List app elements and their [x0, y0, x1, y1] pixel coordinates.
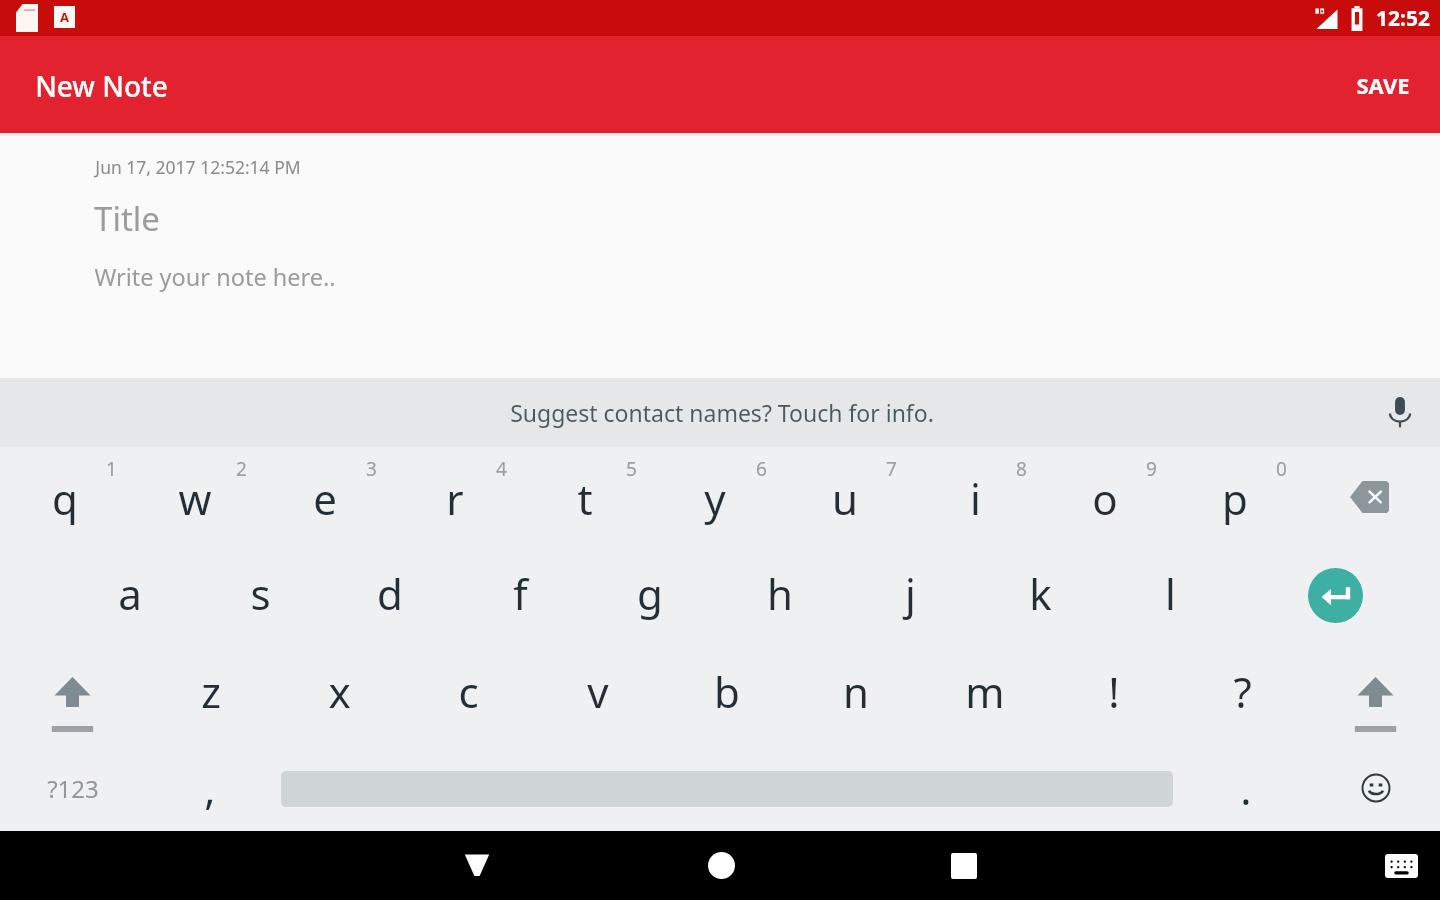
staticText: 4 [496, 456, 507, 482]
button[interactable]: c [404, 639, 533, 735]
staticText: e [313, 470, 337, 527]
staticText: c [458, 663, 479, 720]
staticText: p [1222, 470, 1248, 527]
staticText: h [767, 565, 793, 622]
staticText: SAVE [1356, 70, 1410, 100]
staticText: q [52, 470, 78, 527]
button[interactable]: Backspace [1304, 447, 1434, 543]
button[interactable]: r [390, 447, 520, 543]
staticText: r [446, 470, 464, 527]
button[interactable]: u [780, 447, 910, 543]
button[interactable]: . [1181, 735, 1311, 831]
button[interactable]: Switch keyboard [1351, 831, 1440, 900]
button[interactable]: a [65, 543, 195, 639]
staticText: t [577, 470, 593, 527]
staticText: u [832, 470, 858, 527]
button[interactable]: s [195, 543, 325, 639]
staticText: l [1165, 565, 1176, 622]
button[interactable]: x [275, 639, 404, 735]
staticText: A [60, 8, 69, 26]
staticText: k [1029, 565, 1052, 622]
staticText: z [201, 663, 221, 720]
staticText: n [843, 663, 869, 720]
button[interactable]: Home [671, 831, 771, 900]
button[interactable]: i [910, 447, 1040, 543]
button[interactable]: q [0, 447, 130, 543]
button[interactable]: d [325, 543, 455, 639]
staticText: y [704, 470, 726, 527]
button[interactable]: l [1105, 543, 1235, 639]
button[interactable]: SAVE [1326, 48, 1440, 122]
staticText: 7 [886, 456, 897, 482]
staticText: 5 [626, 456, 637, 482]
button[interactable]: Enter [1270, 543, 1400, 639]
staticText: m [965, 663, 1005, 720]
button[interactable]: k [975, 543, 1105, 639]
button[interactable]: g [585, 543, 715, 639]
button[interactable]: w [130, 447, 260, 543]
button[interactable]: n [791, 639, 920, 735]
button[interactable]: Recents [914, 831, 1014, 900]
staticText: 2 [236, 456, 247, 482]
button[interactable]: m [920, 639, 1049, 735]
button[interactable]: t [520, 447, 650, 543]
button[interactable]: Shift [1305, 639, 1440, 735]
staticText: New Note [35, 67, 168, 105]
staticText: s [250, 565, 271, 622]
staticText: ? [1233, 663, 1252, 720]
staticText: g [637, 565, 663, 622]
staticText: ! [1108, 663, 1120, 720]
button[interactable]: e [260, 447, 390, 543]
button[interactable]: ! [1049, 639, 1178, 735]
staticText: . [1240, 760, 1252, 817]
staticText: a [118, 565, 142, 622]
staticText: w [178, 470, 212, 527]
staticText: b [714, 663, 740, 720]
staticText: v [587, 663, 609, 720]
button[interactable]: p [1170, 447, 1300, 543]
staticText: 0 [1276, 456, 1287, 482]
staticText: x [328, 663, 351, 720]
button[interactable]: z [146, 639, 275, 735]
button[interactable]: ?123 [0, 735, 148, 831]
staticText: f [513, 565, 528, 622]
staticText: 8 [1016, 456, 1027, 482]
staticText: 1 [106, 456, 117, 482]
button[interactable]: o [1040, 447, 1170, 543]
button[interactable]: h [715, 543, 845, 639]
button[interactable]: Voice input [1360, 378, 1440, 447]
staticText: 12:52 [1376, 4, 1430, 33]
staticText: Suggest contact names? Touch for info. [510, 397, 934, 428]
button[interactable]: ? [1178, 639, 1307, 735]
staticText: Title [94, 196, 160, 241]
button[interactable]: , [145, 735, 275, 831]
button[interactable]: Back [427, 831, 527, 900]
staticText: d [377, 565, 403, 622]
staticText: i [970, 470, 981, 527]
staticText: 3 [366, 456, 377, 482]
staticText: 6 [756, 456, 767, 482]
button[interactable]: Emoji [1311, 735, 1440, 831]
staticText: 9 [1146, 456, 1157, 482]
staticText: Write your note here.. [94, 261, 336, 293]
staticText: ?123 [47, 772, 99, 805]
staticText: o [1092, 470, 1118, 527]
button[interactable]: j [845, 543, 975, 639]
staticText: j [905, 565, 916, 622]
button[interactable]: Shift [2, 639, 142, 735]
button[interactable]: y [650, 447, 780, 543]
button[interactable]: f [455, 543, 585, 639]
staticText: , [204, 760, 216, 817]
button[interactable]: b [662, 639, 791, 735]
staticText: Jun 17, 2017 12:52:14 PM [95, 155, 301, 179]
button[interactable]: v [533, 639, 662, 735]
